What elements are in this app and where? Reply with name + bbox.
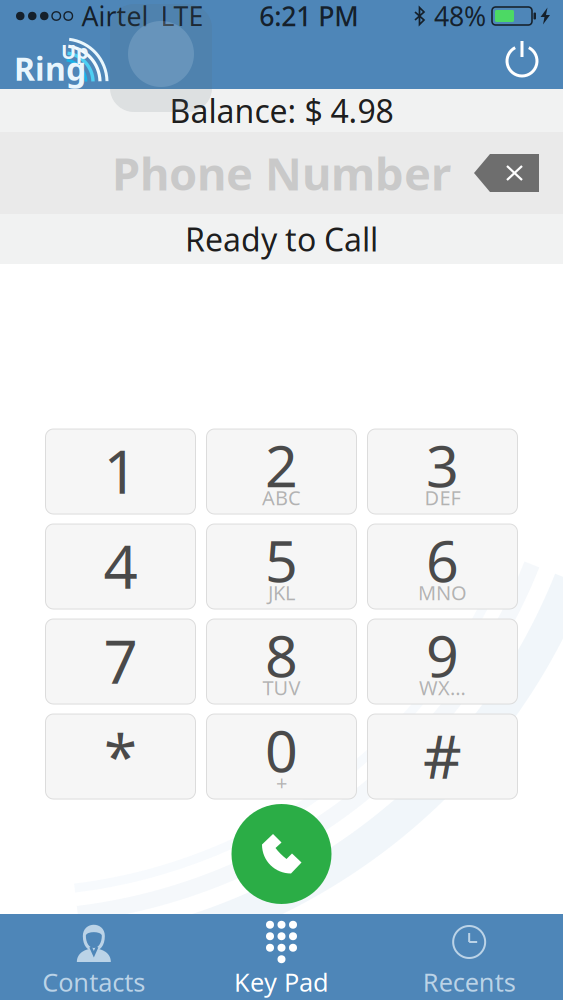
staticText: Ready to Call [185, 218, 378, 260]
button[interactable]: 0 [206, 714, 356, 799]
button[interactable]: 2 [206, 429, 356, 514]
staticText: + [276, 769, 287, 796]
staticText: 4 [103, 526, 137, 605]
button[interactable]: * [45, 714, 195, 799]
staticText: Key Pad [234, 965, 329, 999]
button[interactable]: Delete [474, 154, 539, 192]
staticText: DEF [424, 484, 460, 511]
staticText: Recents [423, 965, 516, 999]
staticText: LTE [160, 0, 203, 34]
button[interactable]: # [367, 714, 517, 799]
staticText: TUV [262, 674, 300, 701]
staticText: * [104, 716, 137, 795]
staticText: Balance: $ 4.98 [169, 89, 393, 132]
button[interactable]: 3 [367, 429, 517, 514]
staticText: 5 [265, 522, 298, 598]
button[interactable]: Phone Number [0, 132, 563, 214]
staticText: Contacts [42, 965, 145, 999]
staticText: MNO [418, 579, 467, 606]
button[interactable]: 5 [206, 524, 356, 609]
staticText: 7 [103, 621, 137, 700]
staticText: 2 [265, 427, 298, 503]
staticText: 9 [426, 617, 459, 693]
button[interactable]: 7 [45, 619, 195, 704]
staticText: 6 [426, 522, 459, 598]
button[interactable]: Power [501, 38, 543, 82]
button[interactable]: Call [231, 804, 331, 904]
staticText: WX… [419, 674, 466, 701]
staticText: Up [61, 38, 89, 65]
button[interactable]: 9 [367, 619, 517, 704]
staticText: 48% [434, 0, 486, 34]
staticText: 3 [426, 427, 459, 503]
staticText: 6:21 PM [259, 0, 358, 34]
staticText: 0 [265, 712, 298, 788]
button[interactable]: Key Pad [188, 914, 375, 1000]
staticText: ABC [262, 484, 301, 511]
staticText: 8 [265, 617, 298, 693]
button[interactable]: 4 [45, 524, 195, 609]
staticText: # [423, 716, 462, 795]
button[interactable]: 8 [206, 619, 356, 704]
staticText: Ring [14, 47, 86, 89]
staticText: JKL [268, 579, 295, 606]
button[interactable]: 6 [367, 524, 517, 609]
staticText: 1 [103, 431, 137, 510]
button[interactable]: Recents [375, 914, 563, 1000]
button[interactable]: 1 [45, 429, 195, 514]
staticText: Phone Number [112, 143, 451, 203]
staticText: Airtel [81, 0, 148, 34]
button[interactable]: Contacts [0, 914, 188, 1000]
